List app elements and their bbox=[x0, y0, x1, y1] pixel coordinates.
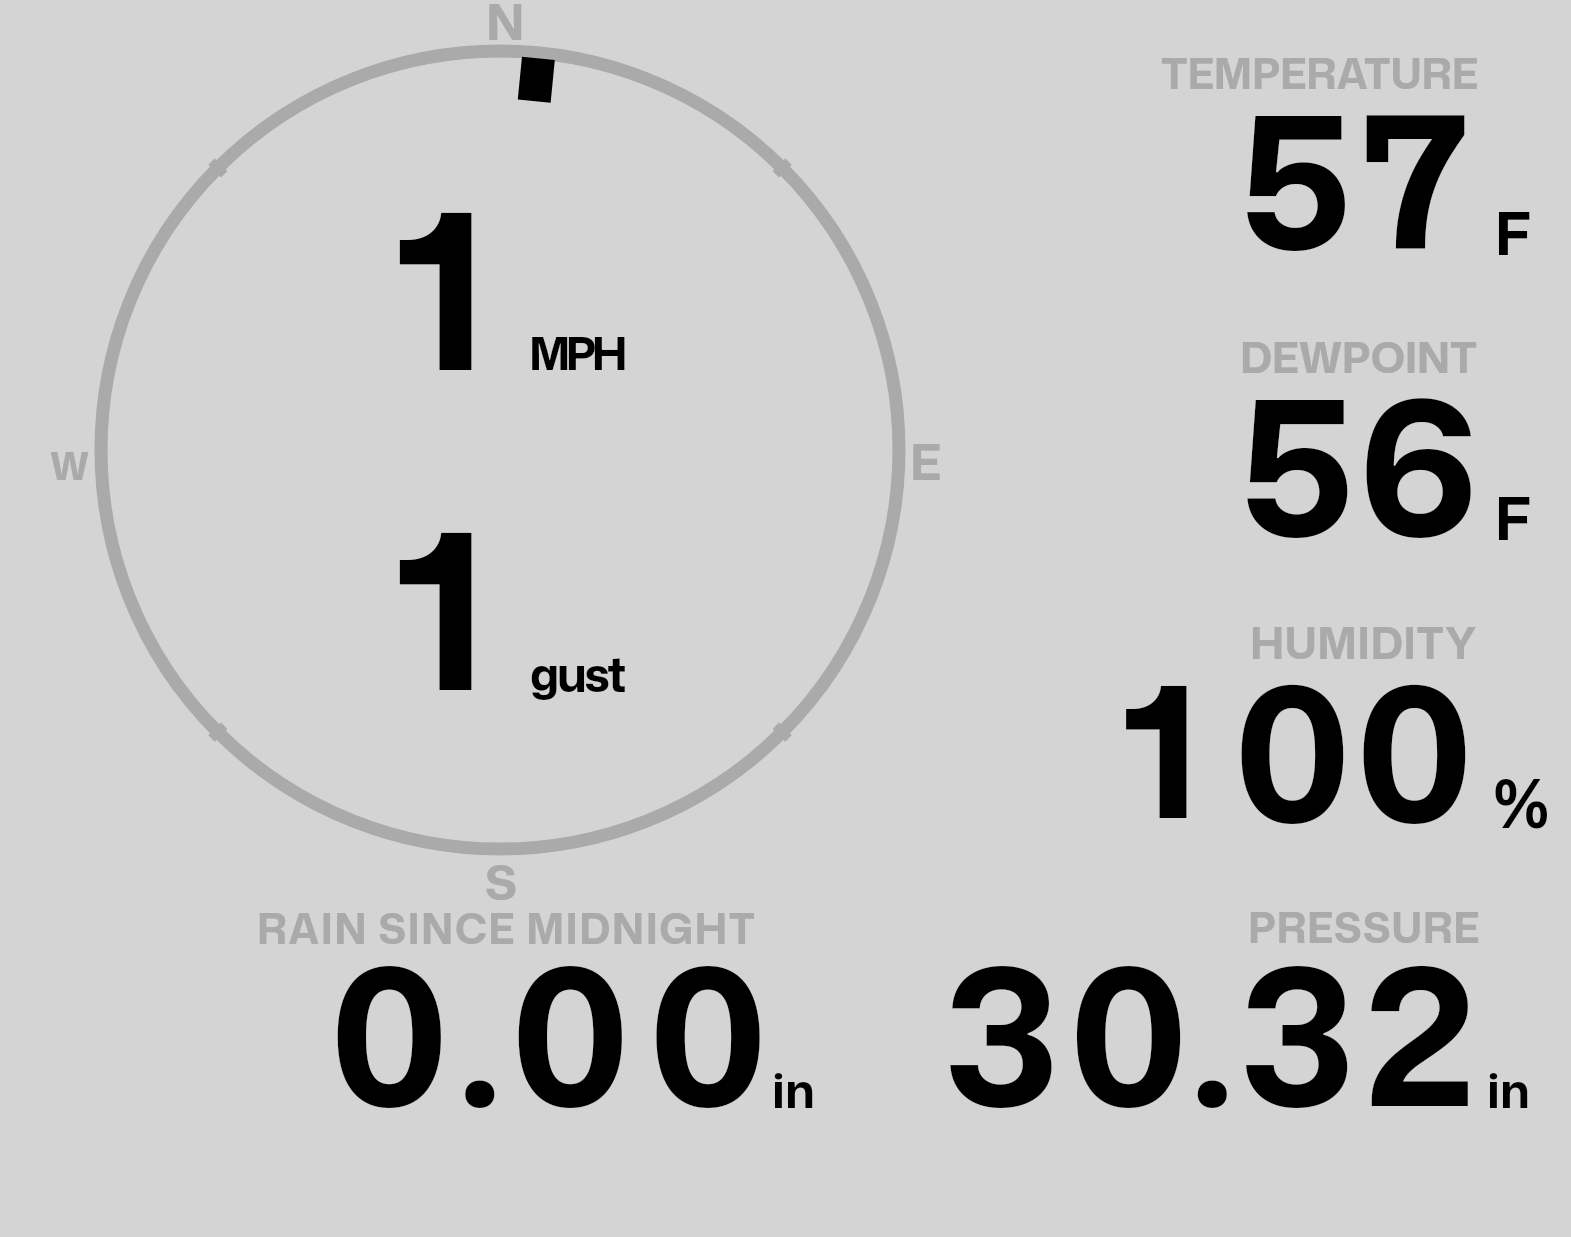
button[interactable]: Pressure 30.32 inches bbox=[930, 885, 1560, 1125]
staticText: 1 bbox=[395, 133, 487, 440]
staticText: DEWPOINT bbox=[1240, 326, 1477, 386]
staticText: 1 bbox=[1122, 618, 1200, 877]
staticText: TEMPERATURE bbox=[1161, 43, 1479, 102]
button[interactable]: Temperature 57 degrees Fahrenheit bbox=[1100, 30, 1560, 280]
staticText: F bbox=[1495, 477, 1531, 558]
staticText: N bbox=[486, 0, 525, 56]
staticText: gust bbox=[530, 640, 625, 707]
staticText: in bbox=[772, 1056, 815, 1123]
staticText: S bbox=[485, 848, 517, 916]
staticText: % bbox=[1492, 754, 1551, 850]
staticText: 0.00 bbox=[330, 897, 783, 1168]
staticText: 00 bbox=[1234, 616, 1474, 882]
staticText: HUMIDITY bbox=[1250, 612, 1477, 673]
staticText: F bbox=[1495, 192, 1531, 273]
staticText: 56 bbox=[1240, 330, 1481, 597]
staticText: in bbox=[1487, 1056, 1530, 1123]
staticText: RAIN SINCE MIDNIGHT bbox=[257, 899, 757, 957]
staticText: W bbox=[50, 438, 90, 492]
staticText: 57 bbox=[1240, 47, 1478, 308]
staticText: E bbox=[910, 426, 942, 496]
button[interactable]: Dewpoint 56 degrees Fahrenheit bbox=[1100, 300, 1560, 560]
button[interactable]: Humidity 100 percent bbox=[1100, 590, 1560, 850]
staticText: 1 bbox=[395, 453, 487, 760]
staticText: PRESSURE bbox=[1248, 898, 1481, 956]
button[interactable]: Wind 1 miles per hour, gusting 1 bbox=[96, 0, 906, 900]
staticText: 30.32 bbox=[945, 897, 1484, 1168]
button[interactable]: Rain since midnight 0.00 inches bbox=[240, 885, 830, 1125]
staticText: MPH bbox=[529, 321, 624, 385]
